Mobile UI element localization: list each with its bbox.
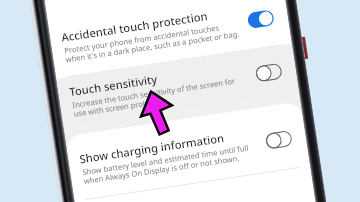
staticText: Touch sensitivity: [68, 71, 158, 99]
staticText: Increase the touch sensitivity of the sc…: [72, 76, 238, 119]
staticText: Accidental touch protection: [60, 8, 209, 45]
button[interactable]: Touch sensitivity: [56, 44, 299, 127]
staticText: Show battery level and estimated time un…: [82, 142, 251, 186]
staticText: Protect your phone from accidental touch…: [63, 20, 240, 64]
button[interactable]: Switch off: [265, 130, 293, 150]
staticText: Show charging information: [78, 130, 225, 166]
button[interactable]: Show charging information: [65, 102, 310, 201]
button[interactable]: Switch on: [247, 9, 275, 29]
button[interactable]: Accidental touch protection: [43, 0, 292, 78]
button[interactable]: Switch off: [255, 63, 283, 82]
